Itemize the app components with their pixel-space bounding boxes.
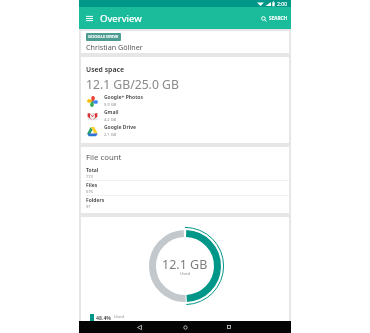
button[interactable]: Files	[81, 181, 289, 195]
staticText: 12.1 GB/25.0 GB	[86, 76, 179, 93]
button[interactable]: Gmail	[86, 108, 284, 123]
button[interactable]: Home	[174, 321, 196, 333]
button[interactable]: SEARCH	[260, 13, 289, 24]
staticText: 2.1 GB	[104, 132, 117, 137]
staticText: Used	[180, 271, 191, 277]
staticText: 12.1 GB	[162, 256, 208, 273]
staticText: File count	[86, 152, 122, 163]
staticText: Used	[114, 314, 125, 320]
staticText: 773	[86, 174, 93, 179]
staticText: 676	[86, 189, 93, 194]
staticText: Files	[86, 182, 98, 189]
staticText: Used space	[86, 65, 125, 74]
staticText: Overview	[100, 12, 142, 25]
staticText: Christian Göllner	[86, 42, 143, 52]
staticText: 5.9 GB	[104, 102, 117, 107]
staticText: GOOGLE DRIVE	[88, 34, 119, 40]
staticText: 4.2 GB	[104, 117, 117, 122]
staticText: 97	[86, 204, 91, 209]
button[interactable]: Google Drive	[86, 123, 284, 138]
staticText: Google+ Photos	[104, 94, 143, 101]
button[interactable]: GOOGLE DRIVE	[81, 31, 289, 53]
staticText: 2:00	[277, 0, 288, 7]
button[interactable]: Total	[81, 166, 289, 180]
button[interactable]: Folders	[81, 196, 289, 210]
button[interactable]: Google+ Photos	[86, 93, 284, 108]
button[interactable]: Back	[128, 321, 150, 333]
button[interactable]: Open navigation drawer	[83, 12, 96, 25]
staticText: Folders	[86, 197, 105, 204]
staticText: Gmail	[104, 109, 119, 116]
staticText: Total	[86, 167, 99, 174]
staticText: SEARCH	[269, 15, 288, 22]
button[interactable]: Recent apps	[218, 321, 240, 333]
staticText: 48.4%	[96, 314, 112, 321]
staticText: Google Drive	[104, 124, 137, 131]
